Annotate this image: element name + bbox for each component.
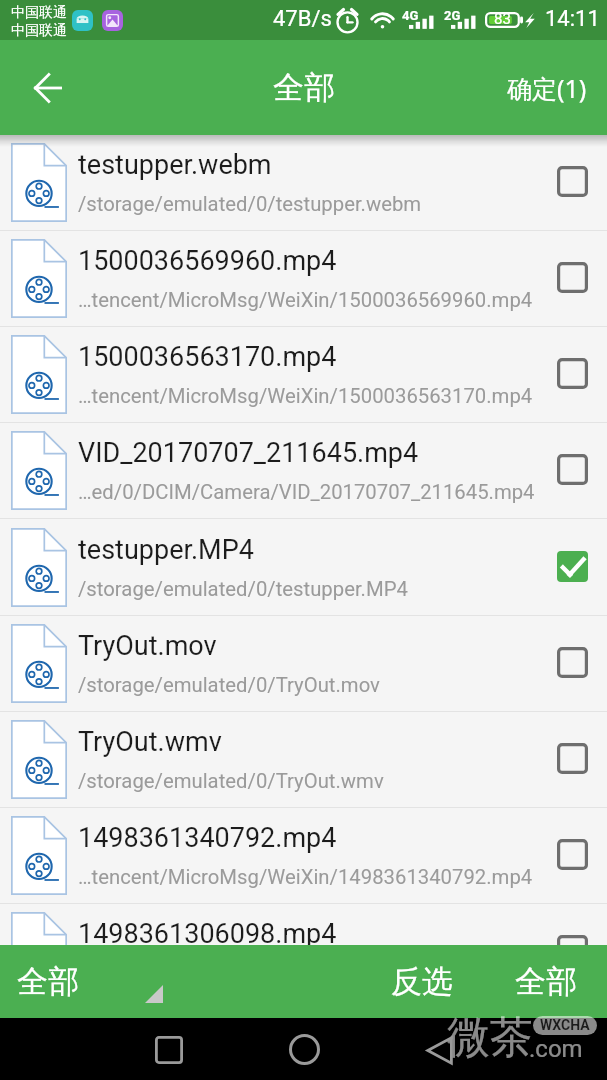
- staticText: …tencent/MicroMsg/WeiXin/1498361340792.m…: [78, 865, 553, 889]
- staticText: …tencent/MicroMsg/WeiXin/1500036569960.m…: [78, 288, 553, 312]
- staticText: 微茶: [447, 1011, 533, 1065]
- staticText: WXCHA: [540, 1017, 590, 1033]
- button[interactable]: Home: [270, 1018, 338, 1080]
- button[interactable]: 全部: [0, 945, 200, 1018]
- staticText: 1498361340792.mp4: [78, 822, 548, 854]
- staticText: 中国联通: [11, 22, 67, 40]
- button[interactable]: VID_20170707_211645.mp4: [0, 423, 607, 519]
- staticText: /storage/emulated/0/TryOut.wmv: [78, 769, 553, 793]
- staticText: /storage/emulated/0/testupper.webm: [78, 192, 553, 216]
- staticText: 确定(1): [507, 71, 587, 105]
- staticText: /storage/emulated/0/TryOut.mov: [78, 673, 553, 697]
- staticText: 4G: [402, 8, 419, 23]
- button[interactable]: 1498361306098.mp4: [0, 904, 607, 945]
- button[interactable]: 反选: [376, 945, 468, 1018]
- staticText: 1500036563170.mp4: [78, 341, 548, 373]
- staticText: 47B/s: [273, 6, 332, 32]
- staticText: 2G: [444, 8, 461, 23]
- button[interactable]: testupper.MP4: [0, 520, 607, 616]
- staticText: testupper.MP4: [78, 534, 548, 566]
- staticText: …tencent/MicroMsg/WeiXin/1500036563170.m…: [78, 384, 553, 408]
- button[interactable]: 1498361340792.mp4: [0, 808, 607, 904]
- staticText: TryOut.wmv: [78, 726, 548, 758]
- button[interactable]: Recent apps: [135, 1018, 203, 1080]
- staticText: 全部: [273, 68, 335, 107]
- staticText: …ed/0/DCIM/Camera/VID_20170707_211645.mp…: [78, 480, 553, 504]
- staticText: 中国联通: [11, 4, 67, 22]
- staticText: 14:11: [545, 6, 600, 32]
- staticText: 全部: [17, 962, 79, 1001]
- staticText: testupper.webm: [78, 149, 548, 181]
- staticText: 1500036569960.mp4: [78, 245, 548, 277]
- staticText: 全部: [515, 962, 577, 1001]
- button[interactable]: 确定(1): [491, 55, 607, 121]
- button[interactable]: Back: [405, 1018, 473, 1080]
- staticText: TryOut.mov: [78, 630, 548, 662]
- button[interactable]: TryOut.mov: [0, 616, 607, 712]
- staticText: .com: [529, 1035, 583, 1063]
- staticText: 1498361306098.mp4: [78, 918, 548, 945]
- button[interactable]: 1500036569960.mp4: [0, 231, 607, 327]
- staticText: 83: [494, 10, 511, 28]
- button[interactable]: testupper.webm: [0, 135, 607, 231]
- button[interactable]: 1500036563170.mp4: [0, 327, 607, 423]
- button[interactable]: Back: [12, 40, 84, 135]
- staticText: /storage/emulated/0/testupper.MP4: [78, 577, 553, 601]
- button[interactable]: TryOut.wmv: [0, 712, 607, 808]
- staticText: 反选: [391, 962, 453, 1001]
- button[interactable]: 全部: [499, 945, 593, 1018]
- staticText: VID_20170707_211645.mp4: [78, 437, 548, 469]
